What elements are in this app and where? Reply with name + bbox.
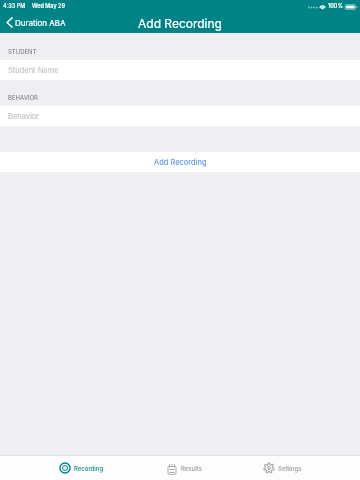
staticText: Wed May 29	[32, 3, 65, 10]
staticText: STUDENT	[8, 48, 37, 55]
staticText: 100%	[328, 3, 343, 10]
button[interactable]: Settings	[263, 456, 302, 480]
other: Back	[6, 17, 13, 28]
button[interactable]: Results	[166, 456, 202, 480]
staticText: Add Recording	[138, 16, 222, 31]
staticText: BEHAVIOR	[8, 94, 38, 101]
staticText: Settings	[278, 465, 302, 472]
staticText: Recording	[74, 465, 104, 472]
staticText: Duration ABA	[15, 18, 66, 28]
button[interactable]: Student Name	[0, 60, 360, 80]
staticText: Behavior	[8, 112, 40, 121]
staticText: Add Recording	[154, 158, 207, 167]
button[interactable]: Recording	[59, 456, 104, 480]
staticText: 4:33 PM	[3, 3, 26, 10]
button[interactable]: Back	[6, 17, 66, 28]
staticText: Results	[181, 465, 202, 472]
staticText: Student Name	[8, 66, 59, 75]
button[interactable]: Behavior	[0, 106, 360, 126]
button[interactable]: Add Recording	[0, 152, 360, 172]
